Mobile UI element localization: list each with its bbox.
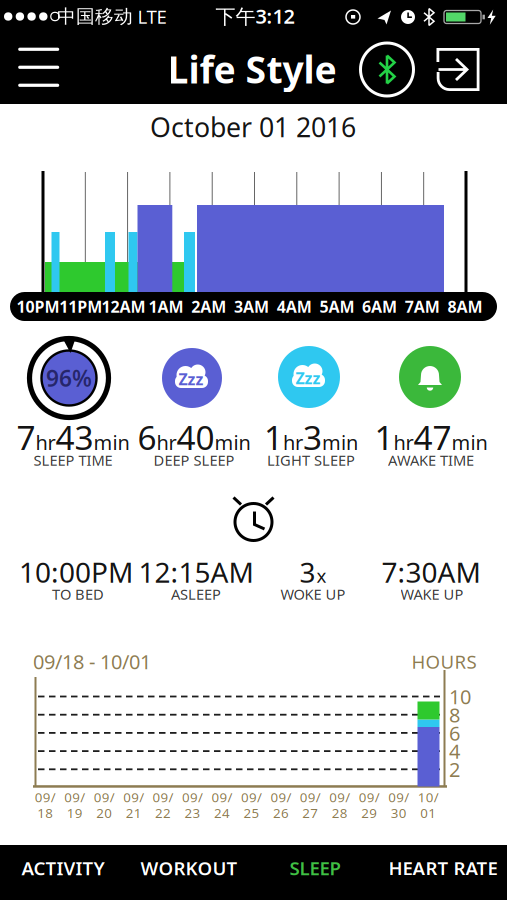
staticText: 29 bbox=[361, 804, 377, 822]
staticText: SLEEP bbox=[289, 856, 340, 880]
staticText: 12:15AM bbox=[138, 553, 253, 591]
staticText: 09/ bbox=[270, 788, 291, 806]
staticText: 25 bbox=[243, 804, 259, 822]
staticText: 09/ bbox=[153, 788, 174, 806]
staticText: 47 bbox=[413, 415, 451, 459]
staticText: 96% bbox=[46, 363, 92, 393]
staticText: 3 bbox=[299, 553, 315, 591]
button[interactable]: HEART RATE bbox=[378, 846, 507, 890]
staticText: 09/ bbox=[300, 788, 321, 806]
staticText: 09/ bbox=[182, 788, 203, 806]
staticText: min bbox=[214, 429, 250, 455]
staticText: 09/ bbox=[123, 788, 144, 806]
staticText: October 01 2016 bbox=[150, 109, 356, 145]
staticText: 22 bbox=[155, 804, 171, 822]
staticText: 10 bbox=[449, 683, 471, 710]
staticText: WAKE UP bbox=[400, 584, 463, 604]
staticText: 01 bbox=[420, 804, 436, 822]
staticText: ASLEEP bbox=[171, 584, 221, 604]
staticText: 4AM bbox=[277, 296, 312, 317]
staticText: 40 bbox=[176, 415, 214, 459]
staticText: 23 bbox=[185, 804, 201, 822]
staticText: 5AM bbox=[319, 296, 354, 317]
staticText: hr bbox=[283, 429, 303, 455]
button[interactable]: WORKOUT bbox=[129, 846, 249, 890]
staticText: min bbox=[451, 429, 487, 455]
staticText: 10:00PM bbox=[19, 553, 133, 591]
staticText: 09/ bbox=[211, 788, 232, 806]
staticText: 12AM bbox=[101, 296, 145, 317]
staticText: min bbox=[322, 429, 358, 455]
staticText: 09/ bbox=[388, 788, 409, 806]
staticText: 20 bbox=[96, 804, 112, 822]
staticText: 10/ bbox=[418, 788, 439, 806]
staticText: Life Style bbox=[167, 44, 336, 94]
staticText: 3 bbox=[303, 415, 322, 459]
staticText: 30 bbox=[391, 804, 407, 822]
staticText: 1 bbox=[264, 415, 283, 459]
staticText: 26 bbox=[273, 804, 289, 822]
staticText: AWAKE TIME bbox=[388, 450, 474, 470]
staticText: SLEEP TIME bbox=[33, 450, 112, 470]
staticText: 28 bbox=[332, 804, 348, 822]
staticText: 8 bbox=[449, 701, 460, 728]
button[interactable]: Sign out bbox=[436, 48, 479, 91]
staticText: 7AM bbox=[405, 296, 440, 317]
staticText: 2AM bbox=[191, 296, 226, 317]
staticText: x bbox=[316, 563, 326, 588]
staticText: 21 bbox=[126, 804, 142, 822]
staticText: hr bbox=[393, 429, 413, 455]
staticText: Zzz bbox=[178, 368, 203, 390]
staticText: HOURS bbox=[411, 649, 476, 674]
staticText: 中国移动 bbox=[57, 5, 133, 28]
staticText: 19 bbox=[67, 804, 83, 822]
staticText: 09/ bbox=[64, 788, 85, 806]
staticText: 24 bbox=[214, 804, 230, 822]
button[interactable]: Menu bbox=[18, 48, 59, 87]
staticText: DEEP SLEEP bbox=[153, 450, 234, 470]
button[interactable]: ACTIVITY bbox=[3, 846, 123, 890]
staticText: hr bbox=[35, 429, 55, 455]
staticText: LIGHT SLEEP bbox=[267, 450, 355, 470]
staticText: 27 bbox=[302, 804, 318, 822]
staticText: 09/ bbox=[35, 788, 56, 806]
staticText: Zzz bbox=[295, 367, 320, 389]
staticText: 4 bbox=[449, 738, 460, 764]
staticText: 09/ bbox=[94, 788, 115, 806]
staticText: 8AM bbox=[447, 296, 482, 317]
staticText: 7:30AM bbox=[381, 553, 480, 591]
staticText: 6 bbox=[137, 415, 156, 459]
staticText: LTE bbox=[137, 4, 166, 29]
staticText: ACTIVITY bbox=[21, 856, 104, 880]
button[interactable]: SLEEP bbox=[260, 846, 370, 890]
staticText: 1AM bbox=[149, 296, 184, 317]
staticText: TO BED bbox=[52, 584, 104, 604]
staticText: 09/ bbox=[241, 788, 262, 806]
staticText: 09/ bbox=[329, 788, 350, 806]
staticText: 11PM bbox=[59, 296, 102, 317]
staticText: WORKOUT bbox=[140, 856, 237, 880]
staticText: 09/ bbox=[359, 788, 380, 806]
staticText: 下午3:12 bbox=[215, 3, 294, 29]
staticText: 3AM bbox=[234, 296, 269, 317]
staticText: 18 bbox=[37, 804, 53, 822]
staticText: 2 bbox=[449, 756, 460, 783]
staticText: 6 bbox=[449, 720, 460, 746]
staticText: 10PM bbox=[16, 296, 59, 317]
staticText: 43 bbox=[55, 415, 93, 459]
staticText: HEART RATE bbox=[388, 856, 497, 880]
staticText: WOKE UP bbox=[280, 584, 345, 604]
staticText: min bbox=[93, 429, 129, 455]
staticText: 6AM bbox=[362, 296, 397, 317]
staticText: 09/18 - 10/01 bbox=[33, 648, 151, 675]
staticText: 1 bbox=[374, 415, 393, 459]
button[interactable]: Bluetooth bbox=[360, 43, 413, 96]
staticText: hr bbox=[156, 429, 176, 455]
staticText: 7 bbox=[16, 415, 35, 459]
